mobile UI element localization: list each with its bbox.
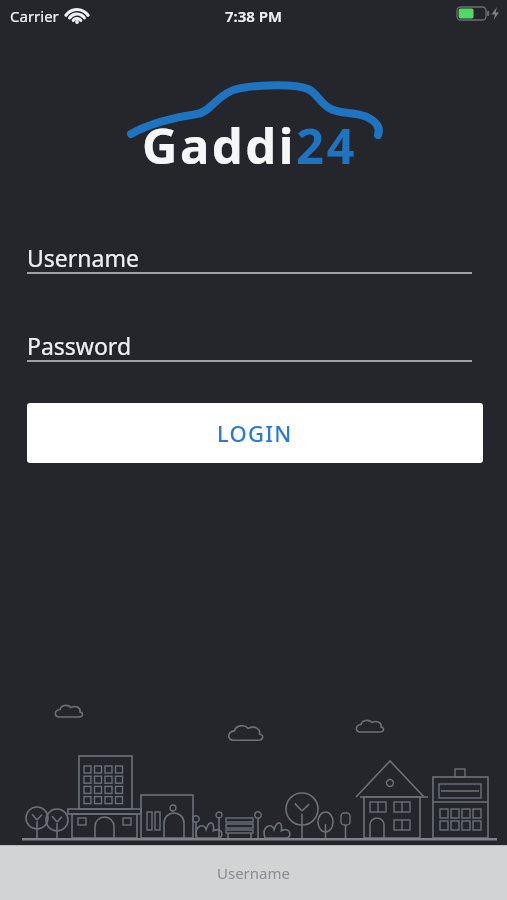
staticText: Gaddi (142, 112, 296, 179)
staticText: Password (27, 330, 132, 361)
staticText: Carrier (10, 6, 59, 26)
staticText: Username (27, 242, 139, 273)
staticText: LOGIN (217, 418, 293, 448)
button[interactable]: Username (0, 845, 507, 900)
staticText: 24 (296, 112, 358, 179)
button[interactable]: Password (27, 330, 472, 364)
button[interactable]: Username (27, 242, 472, 276)
button[interactable]: LOGIN (27, 403, 483, 463)
staticText: Username (217, 863, 290, 883)
staticText: 7:38 PM (225, 6, 282, 26)
